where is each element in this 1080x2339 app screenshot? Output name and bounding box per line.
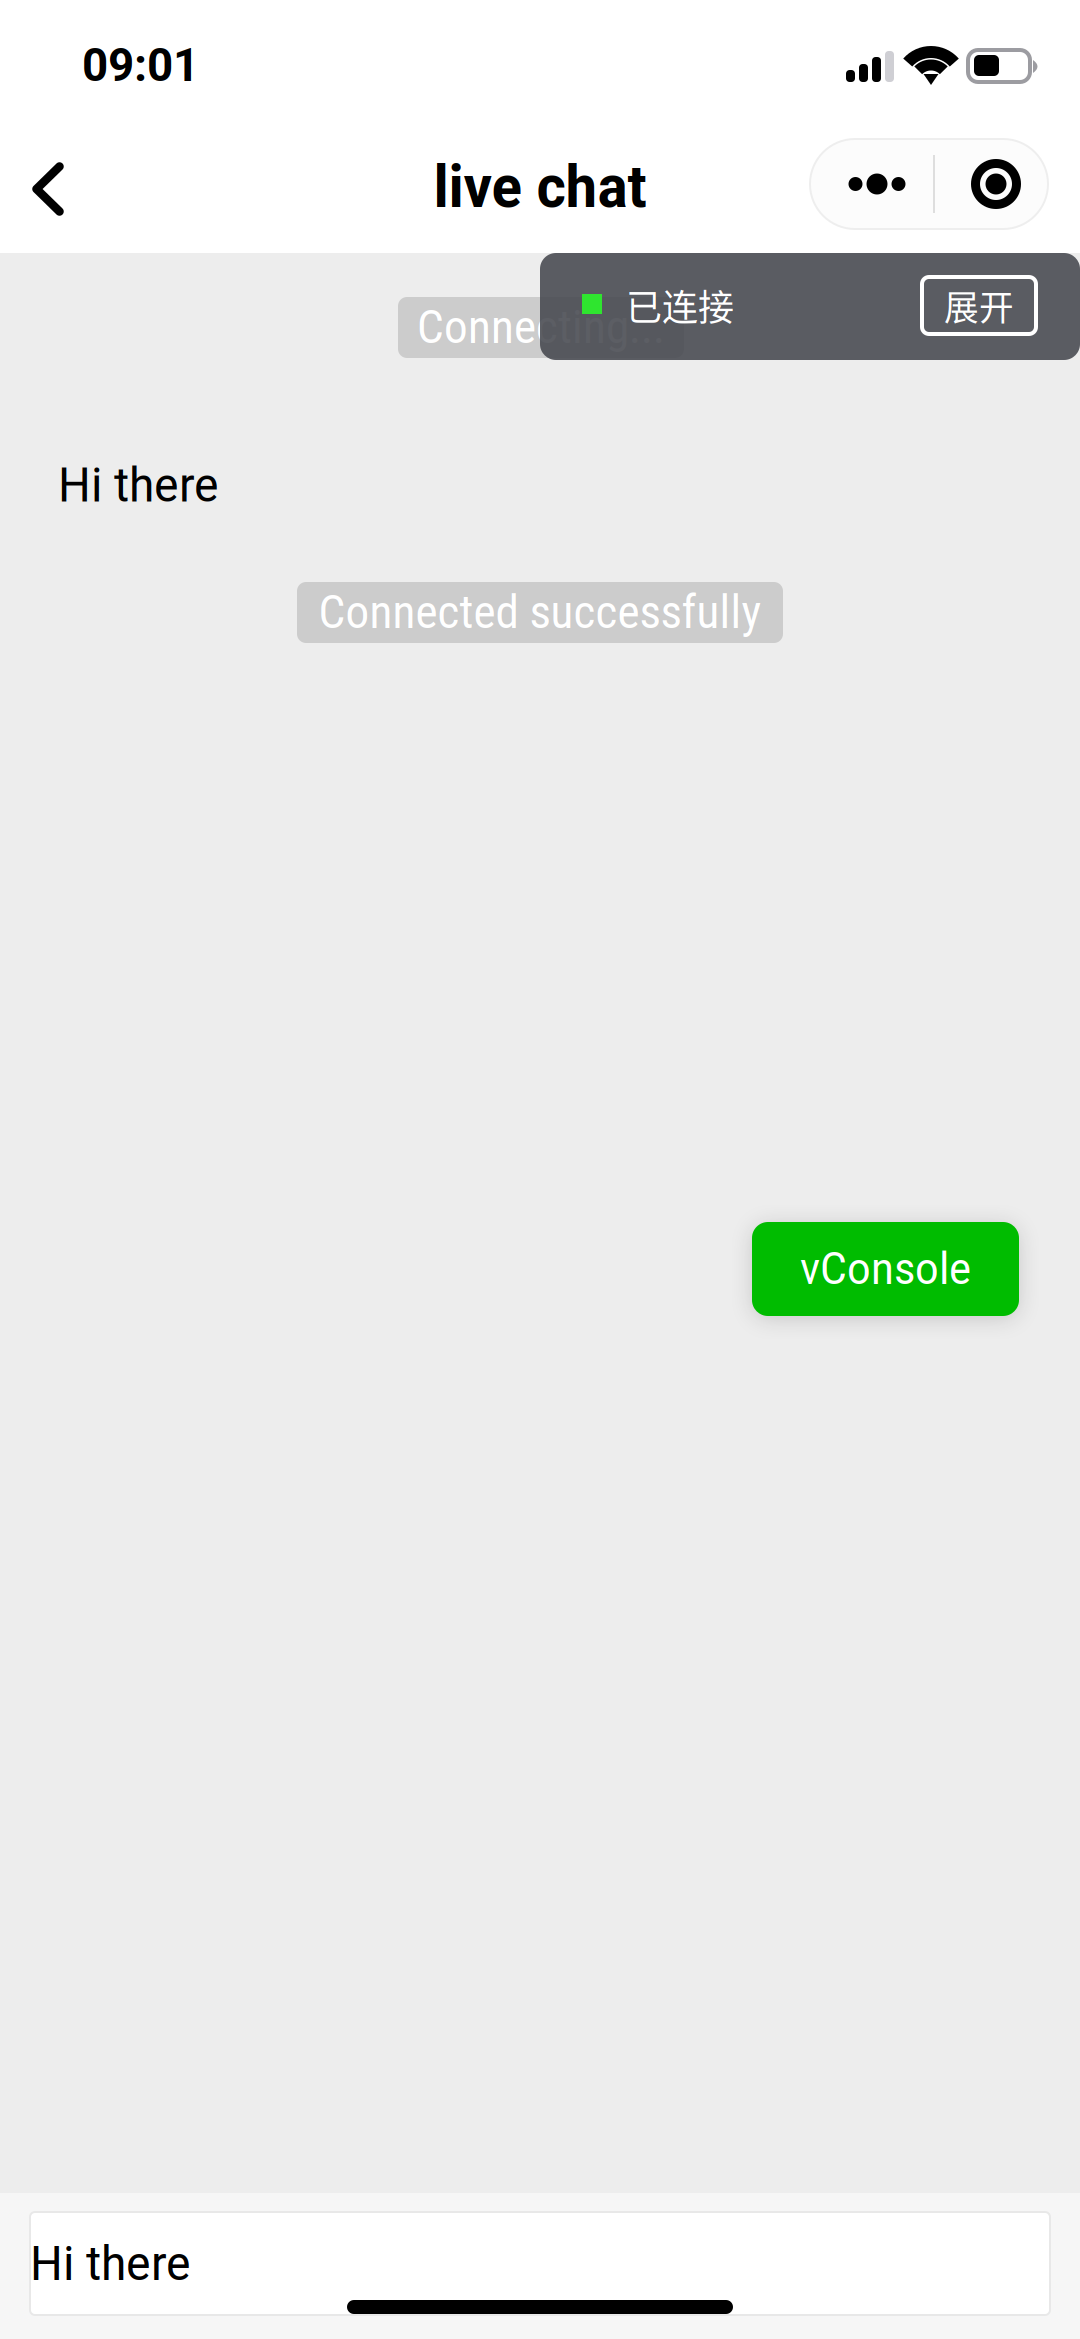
staticText: Hi there bbox=[30, 2235, 191, 2292]
staticText: 已连接 bbox=[626, 279, 734, 331]
staticText: 展开 bbox=[944, 280, 1014, 331]
staticText: Hi there bbox=[58, 457, 219, 513]
button[interactable]: Close mini program bbox=[939, 139, 1053, 229]
button[interactable]: Hi there bbox=[30, 2212, 1050, 2315]
button[interactable]: Back bbox=[14, 158, 82, 220]
staticText: vConsole bbox=[800, 1243, 971, 1295]
staticText: live chat bbox=[433, 153, 646, 221]
staticText: 09:01 bbox=[82, 38, 199, 92]
button[interactable]: More options bbox=[815, 139, 939, 229]
button[interactable]: vConsole bbox=[752, 1222, 1019, 1316]
staticText: Connecting... bbox=[417, 301, 665, 354]
button[interactable]: Expand vConsole panel bbox=[922, 277, 1036, 334]
staticText: Connected successfully bbox=[318, 586, 761, 639]
